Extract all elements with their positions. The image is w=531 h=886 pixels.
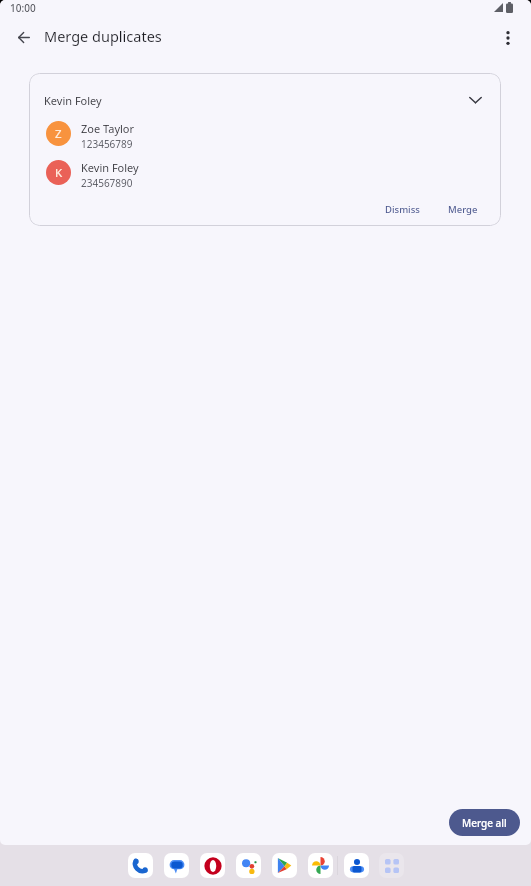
button[interactable]: Merge [440,198,486,221]
staticText: Kevin Foley [81,160,139,175]
staticText: 10:00 [10,1,36,15]
staticText: Z [55,126,62,142]
staticText: K [55,165,63,181]
button[interactable]: All apps [379,853,404,878]
button[interactable]: Merge all [449,809,520,836]
button[interactable]: Z [29,114,501,153]
button[interactable]: Back [9,23,39,53]
button[interactable]: Play Store [272,853,297,878]
button[interactable]: Dismiss [377,198,428,221]
staticText: 123456789 [81,137,133,151]
button[interactable]: Photos [308,853,333,878]
staticText: 234567890 [81,176,133,190]
button[interactable]: Opera [200,853,225,878]
staticText: Merge all [462,816,507,830]
button[interactable]: Messages [164,853,189,878]
staticText: Kevin Foley [44,93,102,108]
button[interactable]: Phone [128,853,153,878]
button[interactable]: Contacts [344,853,369,878]
staticText: Dismiss [385,203,420,216]
button[interactable]: K [29,153,501,192]
staticText: Merge duplicates [44,26,162,46]
staticText: Zoe Taylor [81,121,135,136]
button[interactable]: More options [493,23,523,53]
staticText: Merge [448,203,478,216]
button[interactable]: Kevin Foley [29,73,501,119]
button[interactable]: Assistant [236,853,261,878]
